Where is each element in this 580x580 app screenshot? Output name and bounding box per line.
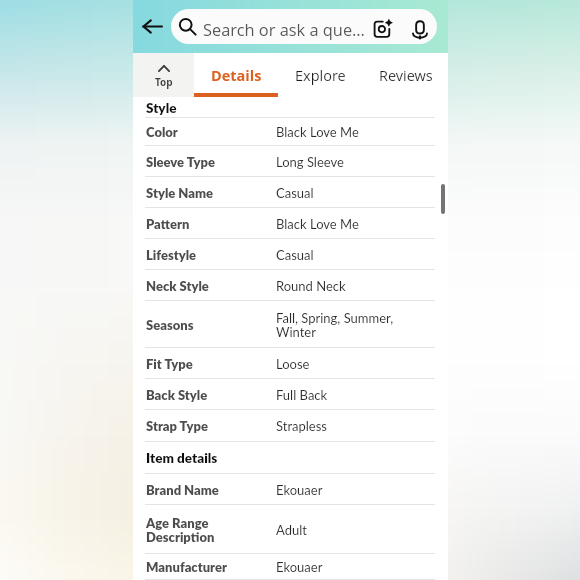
button[interactable]: Style Name [133,177,448,208]
button[interactable]: Back Style [133,379,448,410]
staticText: Adult [276,522,436,538]
staticText: Full Back [276,387,436,403]
staticText: Back Style [146,387,262,403]
staticText: Top [155,75,173,89]
button[interactable]: Brand Name [133,474,448,505]
staticText: Loose [276,356,436,372]
button[interactable]: Neck Style [133,270,448,301]
staticText: Sleeve Type [146,154,262,170]
staticText: Explore [295,66,346,86]
staticText: Fit Type [146,356,262,372]
button[interactable]: Sleeve Type [133,146,448,177]
staticText: Brand Name [146,482,262,498]
button[interactable]: Strap Type [133,410,448,442]
staticText: Item details [146,450,218,466]
staticText: Strapless [276,418,436,434]
button[interactable]: Fit Type [133,348,448,379]
staticText: Round Neck [276,278,436,294]
staticText: Casual [276,247,436,263]
button[interactable]: Manufacturer [133,554,448,580]
button[interactable]: Lifestyle [133,239,448,270]
staticText: Long Sleeve [276,154,436,170]
staticText: Black Love Me [276,124,436,140]
staticText: Details [211,66,262,86]
staticText: Ekouaer [276,559,436,575]
button[interactable]: Top [133,53,194,97]
staticText: Style Name [146,185,262,201]
staticText: Ekouaer [276,482,436,498]
button[interactable]: Details [194,53,278,97]
staticText: Age Range Description [146,515,262,545]
button[interactable]: Age Range Description [133,505,448,554]
staticText: Reviews [379,66,433,86]
button[interactable]: Voice search [407,11,432,44]
staticText: Casual [276,185,436,201]
button[interactable]: Pattern [133,208,448,239]
button[interactable]: Reviews [363,53,448,97]
staticText: Manufacturer [146,559,262,575]
button[interactable]: Seasons [133,301,448,348]
staticText: Style [146,100,177,116]
staticText: Lifestyle [146,247,262,263]
button[interactable]: Back [138,0,166,53]
staticText: Search or ask a que… [203,18,365,40]
staticText: Fall, Spring, Summer, Winter [276,310,436,340]
staticText: Strap Type [146,418,262,434]
button[interactable]: Search with camera [371,12,396,44]
staticText: Pattern [146,216,262,232]
button[interactable]: Color [133,118,448,146]
staticText: Neck Style [146,278,262,294]
staticText: Black Love Me [276,216,436,232]
staticText: Seasons [146,317,262,333]
staticText: Color [146,124,262,140]
button[interactable]: Search or ask a que… [171,9,437,44]
button[interactable]: Explore [278,53,363,97]
